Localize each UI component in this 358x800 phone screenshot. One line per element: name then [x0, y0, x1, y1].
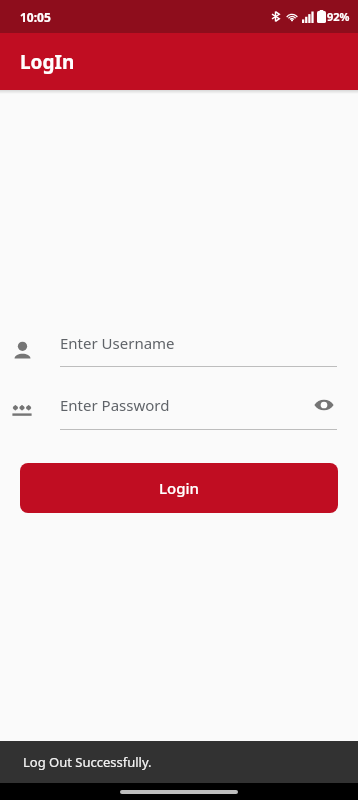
button[interactable]: Login [20, 463, 338, 513]
button[interactable]: Password [0, 387, 358, 435]
staticText: Login [159, 478, 199, 498]
staticText: Enter Password [60, 395, 311, 415]
staticText: 10:05 [20, 9, 51, 25]
button[interactable]: Show password [311, 392, 337, 418]
other: Password [12, 401, 32, 421]
staticText: 92% [327, 9, 350, 24]
staticText: Log Out Successfully. [23, 753, 152, 771]
button[interactable]: Username [0, 326, 358, 374]
staticText: LogIn [20, 49, 75, 75]
other: Username [13, 341, 32, 360]
staticText: Enter Username [60, 333, 175, 353]
